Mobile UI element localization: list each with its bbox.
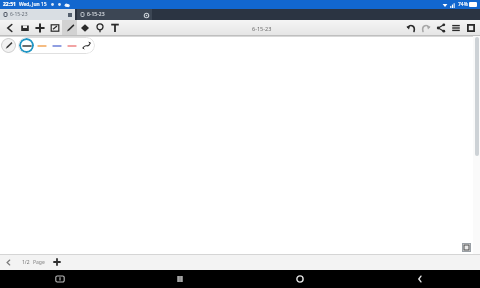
staticText: Wed, Jun 15 bbox=[19, 1, 47, 8]
button[interactable]: Pen bbox=[62, 20, 77, 36]
button[interactable]: Stroke style bbox=[79, 38, 94, 53]
button[interactable]: 1/2 bbox=[20, 259, 47, 266]
button[interactable]: Undo bbox=[403, 20, 418, 36]
staticText: 6-15-23 bbox=[252, 25, 272, 32]
staticText: 22:51 bbox=[3, 1, 16, 8]
staticText: 74% bbox=[458, 1, 468, 8]
staticText: 6-15-23 bbox=[10, 11, 28, 18]
button[interactable]: Share bbox=[433, 20, 448, 36]
button[interactable]: Pen colour bbox=[34, 38, 49, 53]
button[interactable]: 6-15-23 bbox=[0, 9, 75, 20]
staticText: 6-15-23 bbox=[87, 11, 105, 18]
button[interactable]: Pen colour bbox=[49, 38, 64, 53]
button[interactable]: Close tab bbox=[67, 12, 72, 17]
staticText: Page bbox=[33, 259, 45, 266]
button[interactable]: Open bbox=[17, 20, 32, 36]
button[interactable]: Current pen bbox=[1, 38, 16, 53]
button[interactable]: Pen colour bbox=[19, 38, 34, 53]
button[interactable]: Menu bbox=[448, 20, 463, 36]
button[interactable]: Tab options bbox=[143, 12, 149, 18]
button[interactable]: 6-15-23 bbox=[77, 9, 152, 20]
button[interactable]: Eraser bbox=[77, 20, 92, 36]
button[interactable]: Select bbox=[47, 20, 62, 36]
button[interactable]: Text bbox=[107, 20, 122, 36]
button[interactable]: Page thumbnail bbox=[462, 243, 471, 252]
button[interactable]: Back bbox=[360, 270, 480, 288]
button[interactable]: More bbox=[463, 20, 478, 36]
button[interactable]: Back bbox=[2, 20, 17, 36]
button[interactable]: Pen colour bbox=[64, 38, 79, 53]
staticText: 1/2 bbox=[22, 259, 30, 266]
button[interactable]: New page bbox=[32, 20, 47, 36]
button[interactable]: Redo bbox=[418, 20, 433, 36]
button[interactable]: Lasso bbox=[92, 20, 107, 36]
button[interactable]: Add page bbox=[51, 256, 63, 268]
button[interactable]: Home bbox=[240, 270, 360, 288]
button[interactable]: Previous page bbox=[3, 257, 14, 268]
button[interactable]: Keyboard bbox=[0, 270, 120, 288]
button[interactable]: Recents bbox=[120, 270, 240, 288]
